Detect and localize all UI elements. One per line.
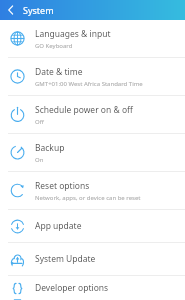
staticText: App update — [35, 220, 82, 232]
staticText: GO Keyboard — [35, 42, 73, 50]
button[interactable]: Developer options — [0, 276, 185, 300]
button[interactable]: Backup — [0, 134, 185, 171]
staticText: Backup — [35, 142, 65, 154]
button[interactable]: Reset options — [0, 172, 185, 209]
staticText: Languages & input — [35, 28, 111, 40]
button[interactable]: System Update — [0, 243, 185, 275]
staticText: Off — [35, 118, 44, 126]
staticText: System — [23, 4, 54, 16]
staticText: On — [35, 156, 44, 164]
staticText: Network, apps, or device can be reset — [35, 194, 141, 202]
staticText: Schedule power on & off — [35, 104, 133, 116]
staticText: System Update — [35, 253, 96, 265]
staticText: Date & time — [35, 66, 83, 78]
staticText: GMT+01:00 West Africa Standard Time — [35, 80, 143, 88]
button[interactable]: App update — [0, 210, 185, 242]
button[interactable]: Languages & input — [0, 20, 185, 57]
button[interactable]: Schedule power on & off — [0, 96, 185, 133]
button[interactable]: Date & time — [0, 58, 185, 95]
staticText: Developer options — [35, 282, 109, 294]
staticText: Reset options — [35, 180, 90, 192]
button[interactable]: Back — [0, 0, 20, 20]
